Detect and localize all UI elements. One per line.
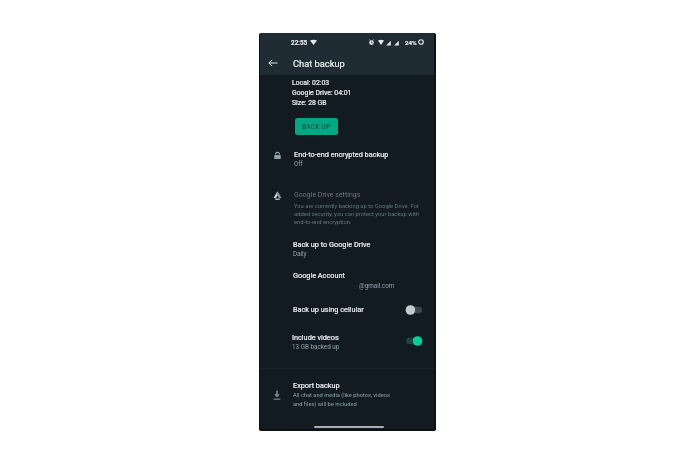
button[interactable]: Include videos <box>259 328 436 354</box>
button[interactable]: Google Account <box>259 267 436 292</box>
staticText: Back up to Google Drive <box>293 240 371 249</box>
staticText: Google Drive: 04:01 <box>292 89 352 97</box>
staticText: Include videos <box>292 333 339 342</box>
staticText: All chat and media (like photos, videos … <box>293 392 390 407</box>
staticText: You are currently backing up to Google D… <box>294 203 420 226</box>
staticText: 13 GB backed up <box>292 343 340 350</box>
staticText: BACK UP <box>302 123 331 130</box>
staticText: Local: 02:03 <box>292 79 330 87</box>
staticText: End-to-end encrypted backup <box>294 150 389 159</box>
staticText: Google Account <box>293 271 345 280</box>
staticText: Export backup <box>293 381 340 390</box>
staticText: Size: 28 GB <box>292 99 327 107</box>
button[interactable]: BACK UP <box>295 118 338 135</box>
staticText: Off <box>294 160 303 167</box>
button[interactable]: Back <box>265 55 281 71</box>
button[interactable]: End-to-end encrypted backup <box>259 146 436 171</box>
staticText: Chat backup <box>293 58 345 69</box>
staticText: Google Drive settings <box>294 191 361 199</box>
button[interactable]: Export backup <box>259 377 436 416</box>
staticText: 22:55 <box>291 39 308 47</box>
button[interactable]: Back up to Google Drive <box>259 236 436 261</box>
staticText: 24% <box>405 39 417 46</box>
button[interactable]: Back up using cellular <box>259 299 436 321</box>
staticText: Back up using cellular <box>293 305 364 314</box>
staticText: Daily <box>293 250 307 257</box>
button[interactable]: Google Drive settings <box>259 186 436 229</box>
staticText: @gmail.com <box>359 282 395 289</box>
